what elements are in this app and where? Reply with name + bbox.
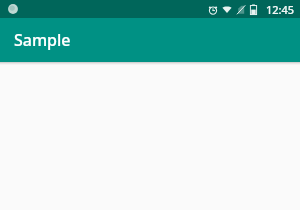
other: Wi-Fi <box>222 5 232 15</box>
other: No SIM card <box>236 5 246 15</box>
other: Alarm set <box>208 5 218 15</box>
staticText: 12:45 <box>266 2 295 17</box>
other: Battery <box>250 4 257 15</box>
staticText: Sample <box>14 29 71 51</box>
other: Notification <box>7 3 19 15</box>
